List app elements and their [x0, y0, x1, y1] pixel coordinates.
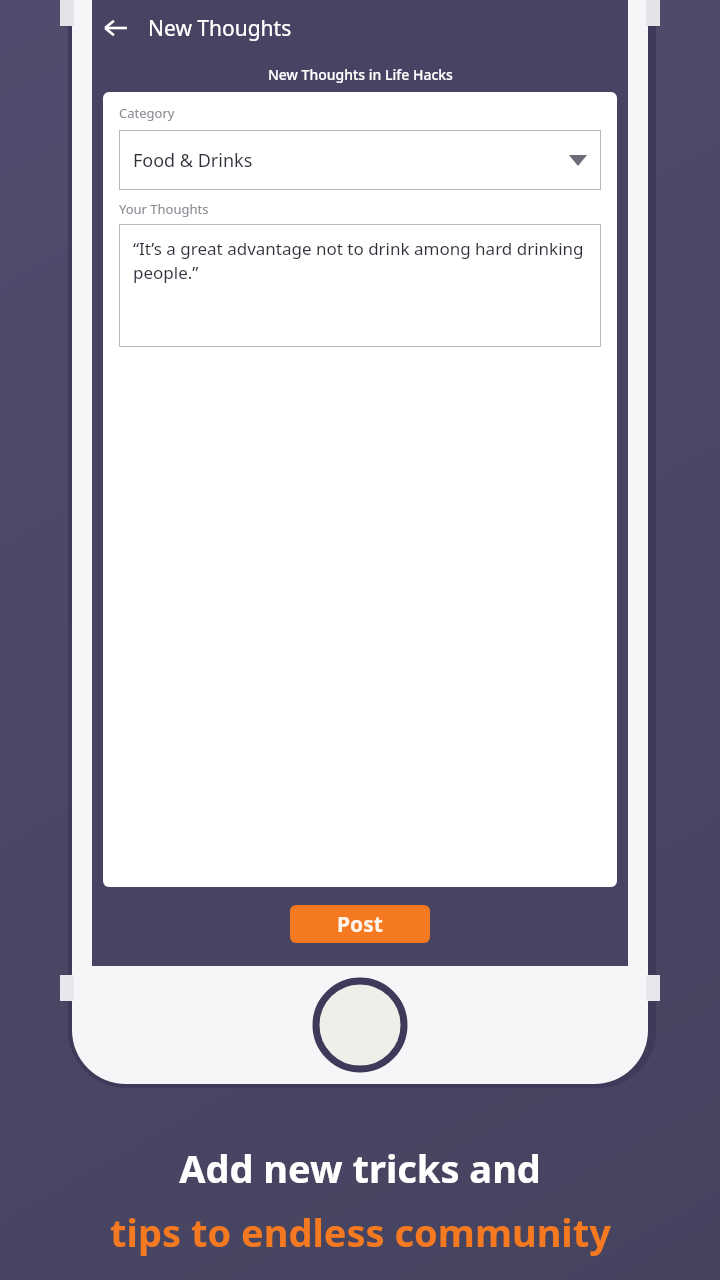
staticText: tips to endless community [110, 1206, 611, 1258]
staticText: Food & Drinks [133, 148, 253, 173]
staticText: Add new tricks and [179, 1142, 541, 1194]
staticText: Your Thoughts [119, 200, 209, 218]
button[interactable]: “It’s a great advantage not to drink amo… [119, 224, 601, 347]
staticText: Category [119, 104, 175, 122]
staticText: New Thoughts in Life Hacks [268, 65, 453, 84]
button[interactable]: Home [312, 977, 408, 1073]
button[interactable]: Post [290, 905, 430, 943]
staticText: New Thoughts [148, 14, 292, 43]
staticText: “It’s a great advantage not to drink amo… [133, 237, 587, 284]
button[interactable]: Back [92, 4, 140, 52]
staticText: Post [337, 910, 383, 939]
button[interactable]: Food & Drinks [119, 130, 601, 190]
